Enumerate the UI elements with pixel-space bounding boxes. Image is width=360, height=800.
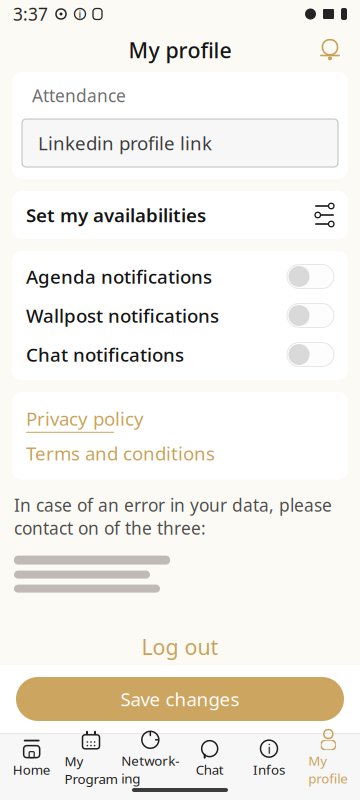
button[interactable]: Home: [2, 734, 61, 784]
staticText: Privacy policy: [26, 406, 144, 431]
button[interactable]: Log out: [0, 623, 360, 671]
button[interactable]: Wallpost notifications: [12, 296, 348, 335]
staticText: In case of an error in your data, please…: [14, 494, 332, 540]
staticText: Networking: [121, 752, 179, 787]
button[interactable]: Set my availabilities: [12, 191, 348, 239]
staticText: Set my availabilities: [26, 203, 206, 227]
button[interactable]: i: [239, 734, 299, 784]
staticText: 3:37: [13, 2, 48, 25]
button[interactable]: Notifications: [318, 38, 342, 62]
button[interactable]: Privacy policy: [12, 392, 348, 441]
button[interactable]: Save changes: [16, 677, 344, 721]
button[interactable]: Terms and conditions: [12, 441, 348, 480]
staticText: Terms and conditions: [26, 441, 215, 466]
button[interactable]: My profile: [299, 725, 358, 793]
staticText: Log out: [141, 633, 218, 661]
button[interactable]: Networking: [121, 725, 180, 793]
staticText: Wallpost notifications: [26, 303, 219, 328]
staticText: Linkedin profile link: [38, 131, 212, 155]
staticText: My profile: [308, 752, 348, 787]
staticText: Chat notifications: [26, 342, 184, 367]
staticText: Infos: [253, 761, 285, 778]
button[interactable]: Chat notifications: [12, 335, 348, 374]
staticText: Save changes: [120, 687, 239, 711]
staticText: Attendance: [32, 84, 126, 107]
button[interactable]: Chat: [180, 734, 239, 784]
button[interactable]: Agenda notifications: [12, 257, 348, 296]
staticText: Agenda notifications: [26, 264, 212, 289]
staticText: i: [267, 740, 270, 757]
staticText: Chat: [196, 761, 224, 778]
staticText: Home: [13, 761, 51, 778]
staticText: My Program: [64, 752, 117, 788]
staticText: My profile: [128, 36, 231, 64]
button[interactable]: My Program: [61, 724, 121, 794]
staticText: i: [78, 7, 81, 21]
